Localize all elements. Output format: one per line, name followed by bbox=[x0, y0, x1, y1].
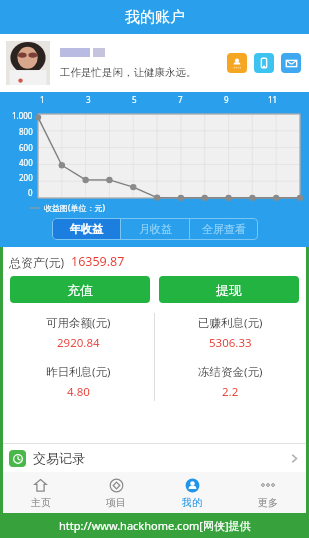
staticText: 交易记录 bbox=[33, 450, 85, 466]
staticText: 年收益 bbox=[70, 222, 103, 236]
button[interactable]: 主页 bbox=[3, 472, 78, 513]
staticText: 收益图(单位：元) bbox=[44, 202, 105, 213]
button[interactable]: Profile photo bbox=[6, 41, 50, 85]
button[interactable]: 年收益 bbox=[52, 218, 120, 240]
staticText: 我的 bbox=[182, 496, 202, 509]
staticText: 工作是忙是闲，让健康永远。 bbox=[60, 66, 197, 79]
button[interactable]: 项目 bbox=[78, 472, 154, 513]
staticText: 总资产(元) bbox=[9, 254, 65, 270]
staticText: 600 bbox=[19, 142, 33, 153]
staticText: 昨日利息(元) bbox=[46, 364, 111, 380]
button[interactable]: 交易记录 bbox=[3, 444, 306, 472]
button[interactable]: Phone bbox=[254, 53, 274, 73]
button[interactable]: Account bbox=[227, 53, 247, 73]
staticText: 项目 bbox=[106, 496, 126, 509]
staticText: 充值 bbox=[67, 282, 93, 298]
button[interactable]: 更多 bbox=[230, 472, 306, 513]
staticText: 2.2 bbox=[222, 384, 239, 400]
staticText: 3 bbox=[86, 94, 91, 105]
button[interactable]: 月收益 bbox=[121, 218, 189, 240]
staticText: 我的账户 bbox=[125, 8, 185, 27]
staticText: 更多 bbox=[258, 496, 278, 509]
staticText: 800 bbox=[19, 126, 33, 137]
staticText: 11 bbox=[268, 94, 278, 105]
staticText: 1 bbox=[40, 94, 45, 105]
staticText: http://www.hackhome.com[网侠]提供 bbox=[59, 518, 251, 533]
staticText: 2920.84 bbox=[57, 335, 100, 351]
staticText: 提现 bbox=[216, 282, 242, 298]
button[interactable]: 提现 bbox=[159, 276, 299, 303]
staticText: 1.000 bbox=[12, 110, 33, 121]
staticText: 可用余额(元) bbox=[46, 315, 111, 331]
button[interactable]: 全屏查看 bbox=[190, 218, 258, 240]
staticText: 冻结资金(元) bbox=[198, 364, 263, 380]
staticText: 200 bbox=[19, 172, 33, 183]
button[interactable]: 我的 bbox=[154, 472, 230, 513]
staticText: 5306.33 bbox=[209, 335, 252, 351]
button[interactable]: 充值 bbox=[10, 276, 150, 303]
staticText: 16359.87 bbox=[71, 253, 125, 270]
staticText: 4.80 bbox=[67, 384, 90, 400]
staticText: 已赚利息(元) bbox=[198, 315, 263, 331]
staticText: 月收益 bbox=[139, 222, 172, 236]
staticText: 主页 bbox=[31, 496, 51, 509]
staticText: 0 bbox=[28, 187, 33, 198]
staticText: 全屏查看 bbox=[202, 222, 246, 236]
staticText: 7 bbox=[178, 94, 183, 105]
button[interactable]: Messages bbox=[281, 53, 301, 73]
staticText: 400 bbox=[19, 157, 33, 168]
staticText: 5 bbox=[132, 94, 137, 105]
staticText: 9 bbox=[224, 94, 229, 105]
